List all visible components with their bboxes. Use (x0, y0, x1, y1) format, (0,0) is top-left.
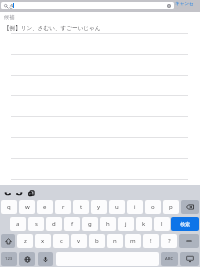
button[interactable]: i (127, 200, 143, 214)
button[interactable]: Delete (179, 234, 199, 248)
staticText: i (134, 203, 136, 211)
staticText: c (60, 237, 63, 245)
button[interactable]: 【例】リン、さむい、すごーいじゃん (0, 20, 200, 36)
button[interactable]: c (53, 234, 69, 248)
button[interactable]: さ (1, 2, 174, 9)
button[interactable]: u (109, 200, 125, 214)
button[interactable] (0, 158, 200, 179)
staticText: q (7, 203, 11, 211)
staticText: n (113, 237, 117, 245)
button[interactable]: Numbers (1, 252, 17, 266)
staticText: j (125, 220, 127, 228)
button[interactable]: 検索 (171, 217, 199, 231)
button[interactable]: k (136, 217, 152, 231)
staticText: 検索 (180, 221, 190, 227)
button[interactable]: Dictation (38, 252, 53, 266)
button[interactable]: l (154, 217, 170, 231)
button[interactable] (0, 54, 200, 75)
button[interactable]: Redo (15, 188, 23, 196)
button[interactable]: o (145, 200, 161, 214)
staticText: ABC (165, 256, 174, 262)
staticText: 【例】リン、さむい、すごーいじゃん (4, 25, 101, 32)
staticText: m (130, 237, 136, 245)
button[interactable]: z (17, 234, 33, 248)
button[interactable] (0, 179, 200, 200)
button[interactable]: a (10, 217, 26, 231)
staticText: b (95, 237, 99, 245)
staticText: o (151, 203, 155, 211)
staticText: ! (150, 237, 152, 245)
button[interactable]: b (89, 234, 105, 248)
button[interactable]: j (118, 217, 134, 231)
button[interactable]: t (73, 200, 89, 214)
button[interactable]: m (125, 234, 141, 248)
button[interactable]: Shift (1, 234, 15, 248)
button[interactable]: y (91, 200, 107, 214)
staticText: t (80, 203, 83, 211)
staticText: f (71, 220, 74, 228)
staticText: l (161, 220, 163, 228)
staticText: さ (9, 3, 15, 9)
button[interactable] (0, 95, 200, 116)
staticText: 候補 (4, 14, 15, 21)
button[interactable]: g (82, 217, 98, 231)
button[interactable]: v (71, 234, 87, 248)
button[interactable]: Undo (3, 188, 11, 196)
button[interactable]: s (28, 217, 44, 231)
button[interactable]: n (107, 234, 123, 248)
staticText: s (35, 220, 38, 228)
staticText: e (43, 203, 47, 211)
button[interactable] (0, 116, 200, 137)
staticText: y (97, 203, 101, 211)
button[interactable]: Next keyboard (19, 252, 35, 266)
staticText: a (16, 220, 20, 228)
button[interactable]: Hide keyboard (180, 252, 199, 266)
staticText: g (88, 220, 92, 228)
button[interactable]: Clear text (167, 4, 171, 8)
staticText: ? (168, 237, 171, 245)
button[interactable] (0, 75, 200, 96)
button[interactable]: x (35, 234, 51, 248)
button[interactable]: e (37, 200, 53, 214)
staticText: キャンセル (175, 1, 198, 9)
button[interactable]: ABC (161, 252, 178, 266)
button[interactable]: p (163, 200, 179, 214)
button[interactable]: d (46, 217, 62, 231)
button[interactable]: r (55, 200, 71, 214)
button[interactable]: q (1, 200, 17, 214)
staticText: k (142, 220, 146, 228)
button[interactable]: Backspace (181, 200, 199, 214)
button[interactable]: Paste (27, 188, 35, 196)
button[interactable]: f (64, 217, 80, 231)
staticText: d (52, 220, 56, 228)
staticText: u (115, 203, 119, 211)
staticText: r (62, 203, 65, 211)
button[interactable]: h (100, 217, 116, 231)
staticText: h (106, 220, 110, 228)
staticText: 123 (5, 256, 13, 262)
staticText: w (25, 203, 30, 211)
button[interactable]: w (19, 200, 35, 214)
button[interactable]: キャンセル (175, 1, 198, 9)
staticText: z (24, 237, 27, 245)
button[interactable]: ! (143, 234, 159, 248)
staticText: x (41, 237, 45, 245)
button[interactable] (0, 33, 200, 54)
staticText: p (169, 203, 173, 211)
button[interactable]: ? (161, 234, 177, 248)
staticText: v (77, 237, 81, 245)
button[interactable] (0, 137, 200, 158)
